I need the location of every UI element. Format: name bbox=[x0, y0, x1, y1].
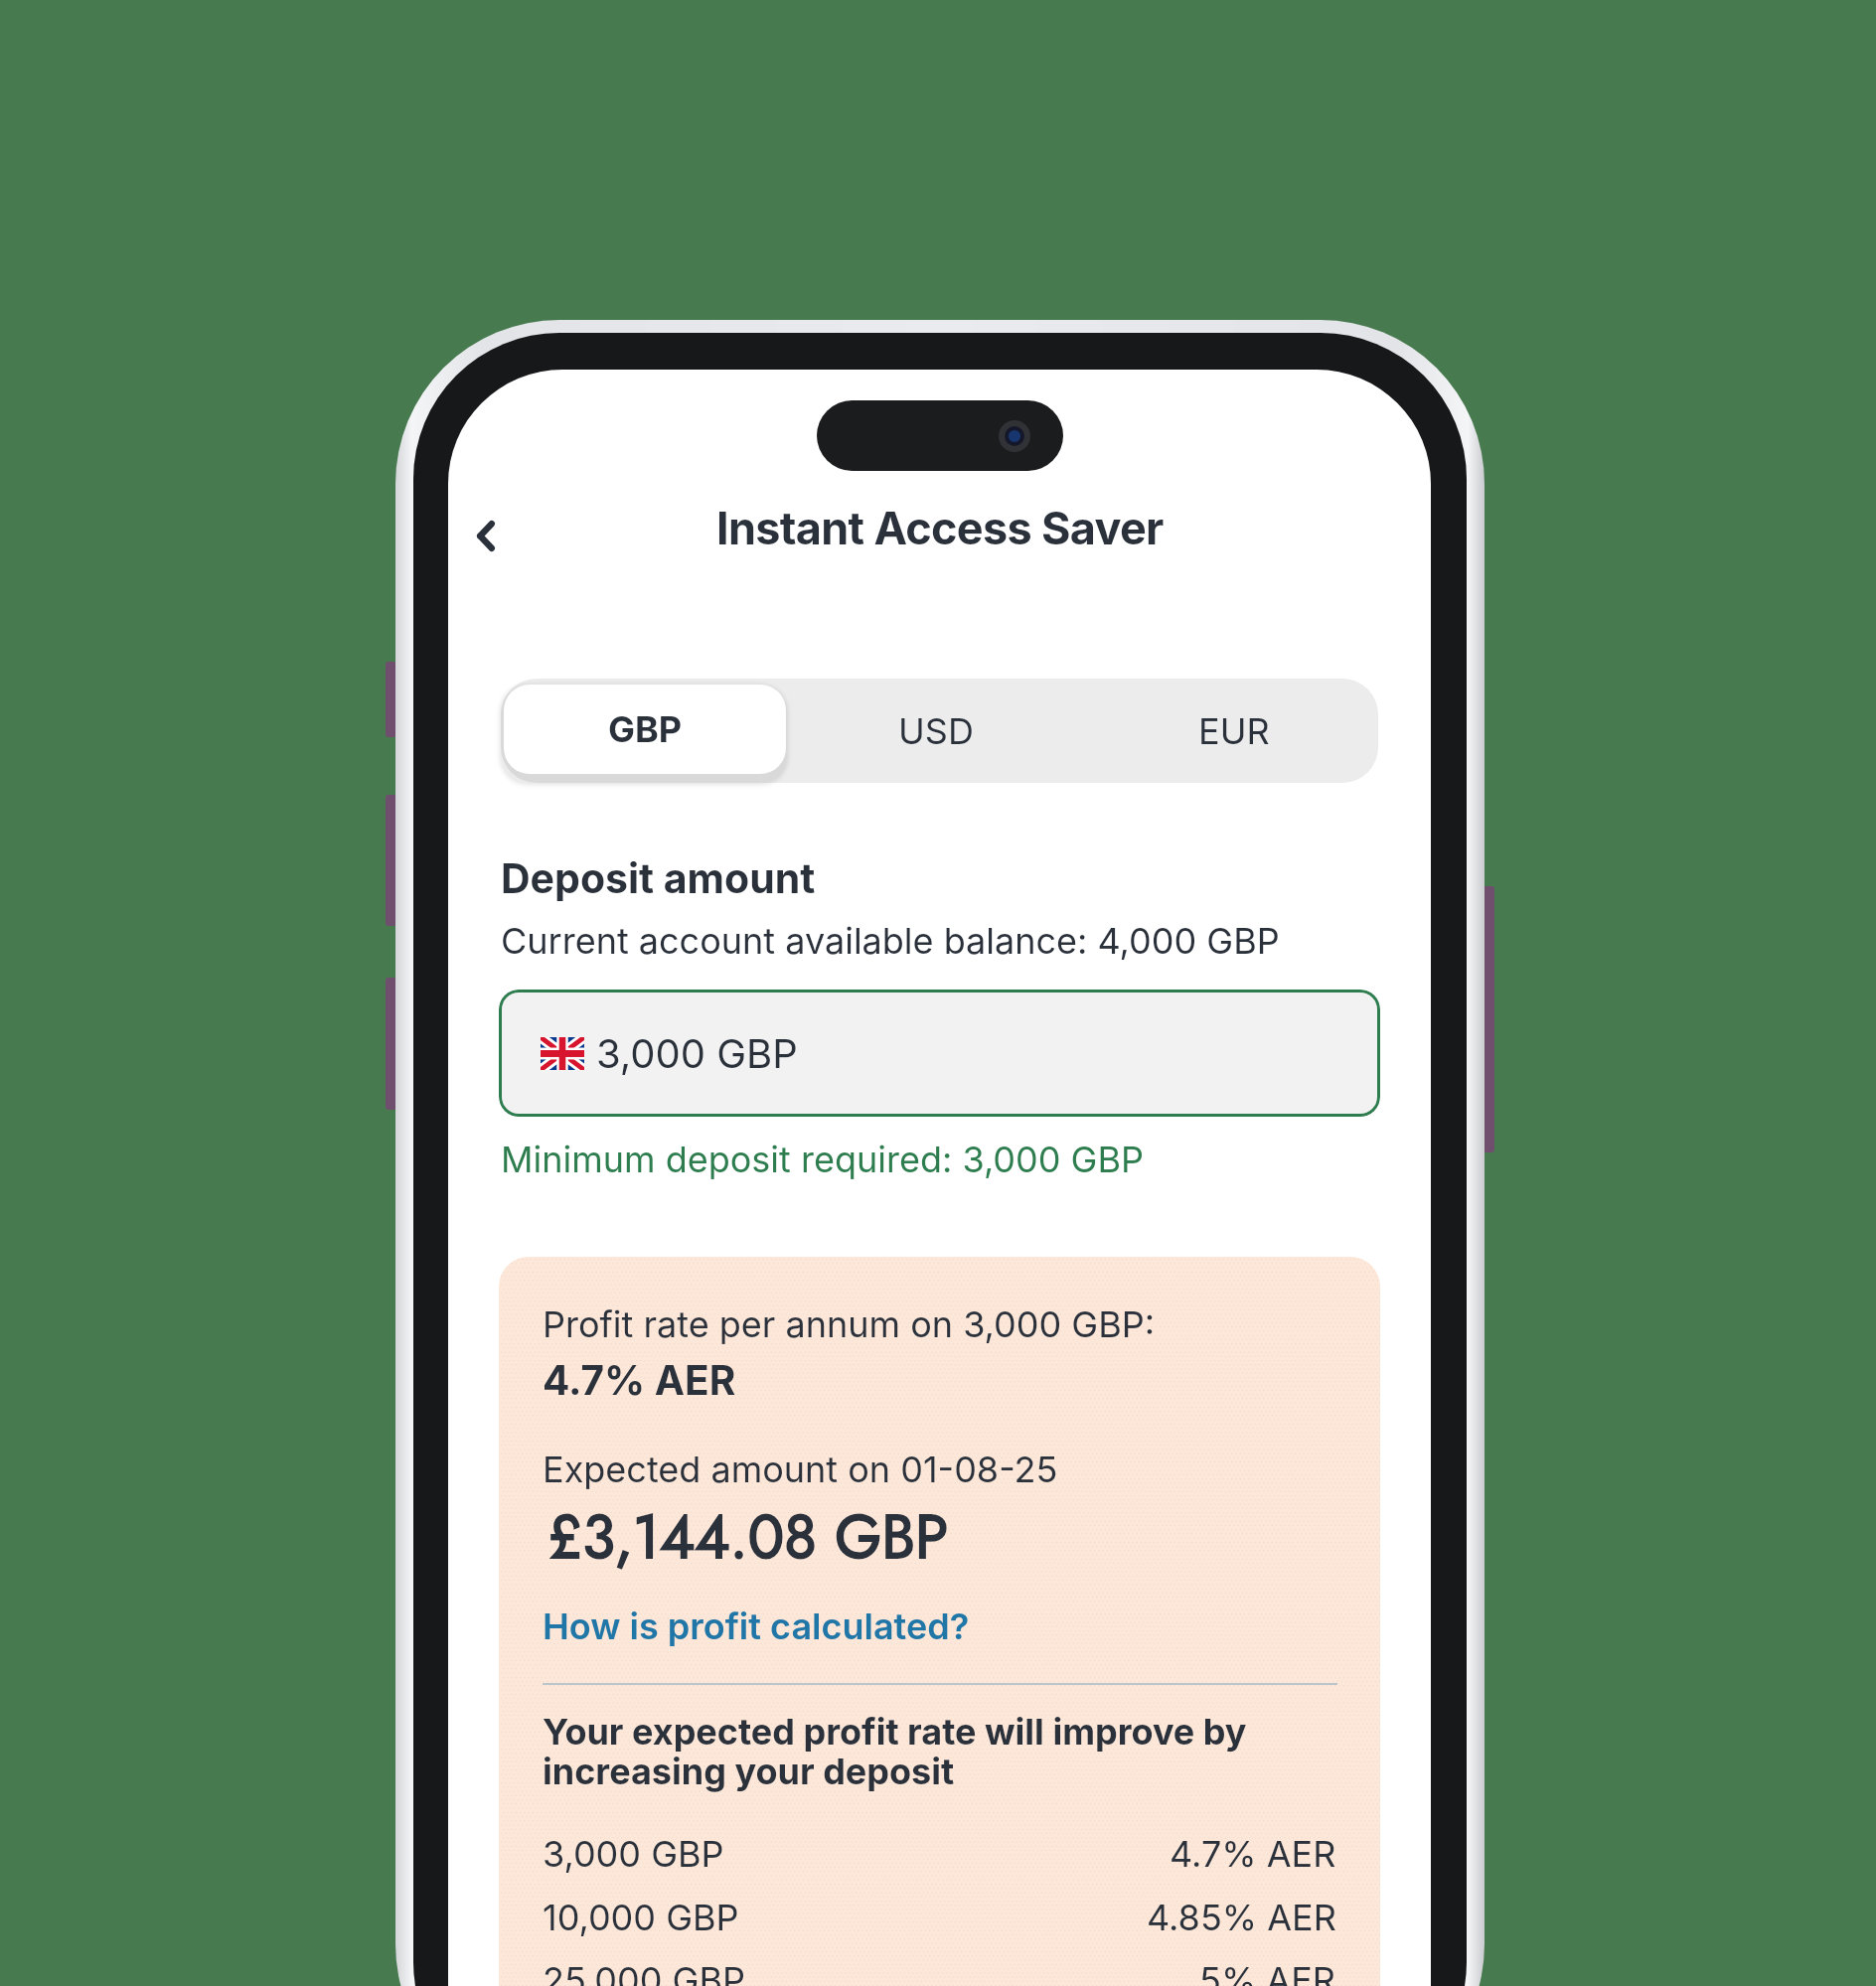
staticText: 5% AER bbox=[1199, 1958, 1336, 1986]
staticText: Deposit amount bbox=[501, 853, 816, 903]
button[interactable]: 3,000 GBP bbox=[499, 990, 1380, 1117]
staticText: 3,000 GBP bbox=[543, 1832, 724, 1876]
staticText: Your expected profit rate will improve b… bbox=[543, 1710, 1247, 1793]
staticText: 4.85% AER bbox=[1147, 1896, 1336, 1939]
staticText: GBP bbox=[608, 707, 683, 751]
staticText: 25,000 GBP bbox=[543, 1958, 745, 1986]
staticText: 4.7% AER bbox=[543, 1356, 736, 1405]
staticText: How is profit calculated? bbox=[543, 1604, 970, 1648]
staticText: 10,000 GBP bbox=[543, 1896, 739, 1939]
staticText: 4.7% AER bbox=[1170, 1832, 1336, 1876]
staticText: Expected amount on 01-08-25 bbox=[543, 1448, 1058, 1491]
button[interactable]: USD bbox=[789, 679, 1082, 783]
staticText: £3,144.08 GBP bbox=[547, 1493, 949, 1580]
staticText: Minimum deposit required: 3,000 GBP bbox=[501, 1138, 1145, 1181]
staticText: Profit rate per annum on 3,000 GBP: bbox=[543, 1302, 1156, 1346]
staticText: USD bbox=[898, 709, 974, 753]
staticText: EUR bbox=[1198, 709, 1270, 753]
button[interactable]: GBP bbox=[504, 685, 786, 774]
staticText: Current account available balance: 4,000… bbox=[501, 919, 1280, 963]
staticText: 3,000 GBP bbox=[596, 1029, 798, 1077]
staticText: Instant Access Saver bbox=[716, 501, 1164, 554]
button[interactable]: Back bbox=[452, 502, 520, 569]
button[interactable]: EUR bbox=[1087, 679, 1380, 783]
